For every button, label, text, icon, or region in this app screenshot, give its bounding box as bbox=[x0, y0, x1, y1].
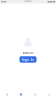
staticText: Sign In bbox=[21, 57, 34, 62]
button[interactable]: Profile bbox=[42, 93, 56, 96]
button[interactable]: Browse bbox=[14, 93, 28, 96]
button[interactable]: Home bbox=[0, 93, 14, 96]
button[interactable]: Sign In bbox=[19, 56, 36, 63]
staticText: Account bbox=[22, 51, 33, 55]
button[interactable]: Notifications bbox=[28, 93, 42, 96]
